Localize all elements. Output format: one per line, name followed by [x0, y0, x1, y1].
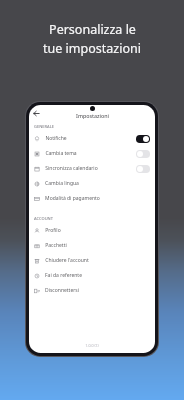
button[interactable]: Pacchetti: [29, 238, 155, 253]
staticText: Personalizza le: [49, 21, 136, 38]
button[interactable]: Notifiche: [29, 131, 155, 146]
staticText: Chiudere l'account: [45, 257, 89, 264]
button[interactable]: Chiudere l'account: [29, 253, 155, 268]
staticText: Pacchetti: [45, 242, 67, 249]
button[interactable]: Profilo: [29, 223, 155, 238]
staticText: Cambia lingua: [45, 180, 79, 187]
button[interactable]: Back: [31, 108, 42, 119]
staticText: Sincronizza calendario: [45, 165, 98, 172]
staticText: Notifiche: [45, 135, 67, 142]
button[interactable]: Enabled: [136, 135, 150, 143]
button[interactable]: Disabled: [136, 165, 150, 173]
staticText: Impostazioni: [76, 112, 109, 119]
staticText: Fai da referente: [45, 272, 82, 279]
button[interactable]: Fai da referente: [29, 268, 155, 283]
button[interactable]: Sincronizza calendario: [29, 161, 155, 176]
staticText: Disconnettersi: [45, 287, 79, 294]
staticText: tue impostazioni: [43, 40, 141, 57]
staticText: 1.0.0 (1): [85, 343, 99, 348]
staticText: Profilo: [45, 227, 61, 234]
button[interactable]: Cambia lingua: [29, 176, 155, 191]
staticText: ACCOUNT: [34, 216, 53, 221]
staticText: Modalità di pagamento: [45, 195, 100, 202]
button[interactable]: Disabled: [136, 150, 150, 158]
button[interactable]: Disconnettersi: [29, 283, 155, 298]
staticText: GENERALE: [34, 124, 54, 129]
button[interactable]: Modalità di pagamento: [29, 191, 155, 206]
staticText: Cambia tema: [45, 150, 77, 157]
button[interactable]: Cambia tema: [29, 146, 155, 161]
